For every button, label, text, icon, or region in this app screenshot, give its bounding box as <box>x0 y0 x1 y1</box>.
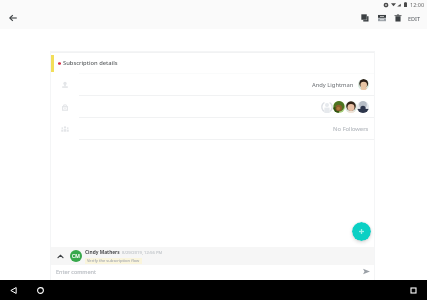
button[interactable]: Home <box>33 283 47 297</box>
button[interactable]: Andy Lightman <box>50 74 375 96</box>
button[interactable]: Back <box>6 283 20 297</box>
button[interactable]: Recents <box>406 283 420 297</box>
staticText: CM <box>72 253 80 260</box>
staticText: Andy Lightman <box>312 81 354 89</box>
staticText: Enter comment <box>56 268 96 275</box>
staticText: Subscription details <box>63 59 118 67</box>
button[interactable]: Send <box>361 266 372 277</box>
button[interactable]: Back <box>5 10 21 26</box>
button[interactable]: No Followers <box>50 118 375 140</box>
button[interactable]: Delete <box>390 10 406 26</box>
button[interactable] <box>50 96 375 118</box>
staticText: EDIT <box>408 15 421 22</box>
button[interactable]: Collapse <box>55 251 66 262</box>
staticText: Cindy Mathers <box>85 249 120 256</box>
staticText: No Followers <box>333 125 369 133</box>
staticText: Verify the subscription flow <box>87 258 140 264</box>
button[interactable]: Split view <box>374 10 390 26</box>
button[interactable]: Duplicate <box>357 10 373 26</box>
button[interactable]: Add <box>352 222 371 241</box>
button[interactable]: EDIT <box>405 10 423 26</box>
staticText: 8/29/2019, 12:56 PM <box>122 250 163 256</box>
staticText: 12:00 <box>410 1 425 8</box>
